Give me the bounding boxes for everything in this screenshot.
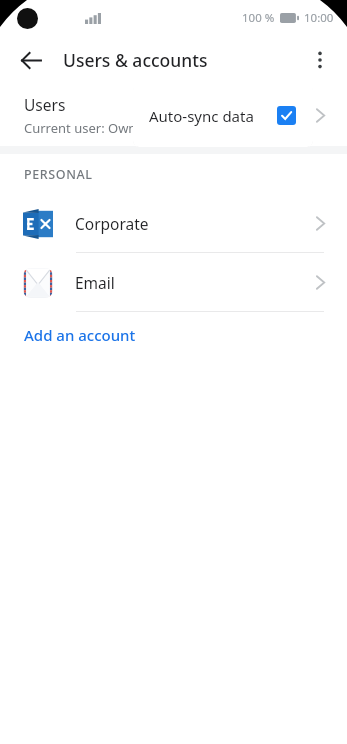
staticText: Auto-sync data — [149, 106, 254, 126]
staticText: PERSONAL — [24, 166, 93, 183]
button[interactable]: Corporate — [0, 194, 347, 252]
button[interactable]: More options — [301, 41, 339, 79]
button[interactable]: Users — [0, 84, 347, 146]
staticText: 10:00 — [304, 10, 334, 26]
button[interactable]: Add an account — [0, 312, 347, 358]
staticText: Email — [75, 272, 115, 293]
staticText: Users — [24, 94, 66, 115]
staticText: Add an account — [24, 325, 136, 345]
button[interactable]: Back — [12, 41, 50, 79]
staticText: Current user: Owner — [24, 119, 150, 137]
staticText: Corporate — [75, 213, 149, 234]
staticText: 100 % — [242, 10, 275, 26]
button[interactable]: Email — [0, 253, 347, 311]
staticText: Users & accounts — [63, 48, 208, 72]
button[interactable]: Auto-sync data — [133, 84, 313, 147]
